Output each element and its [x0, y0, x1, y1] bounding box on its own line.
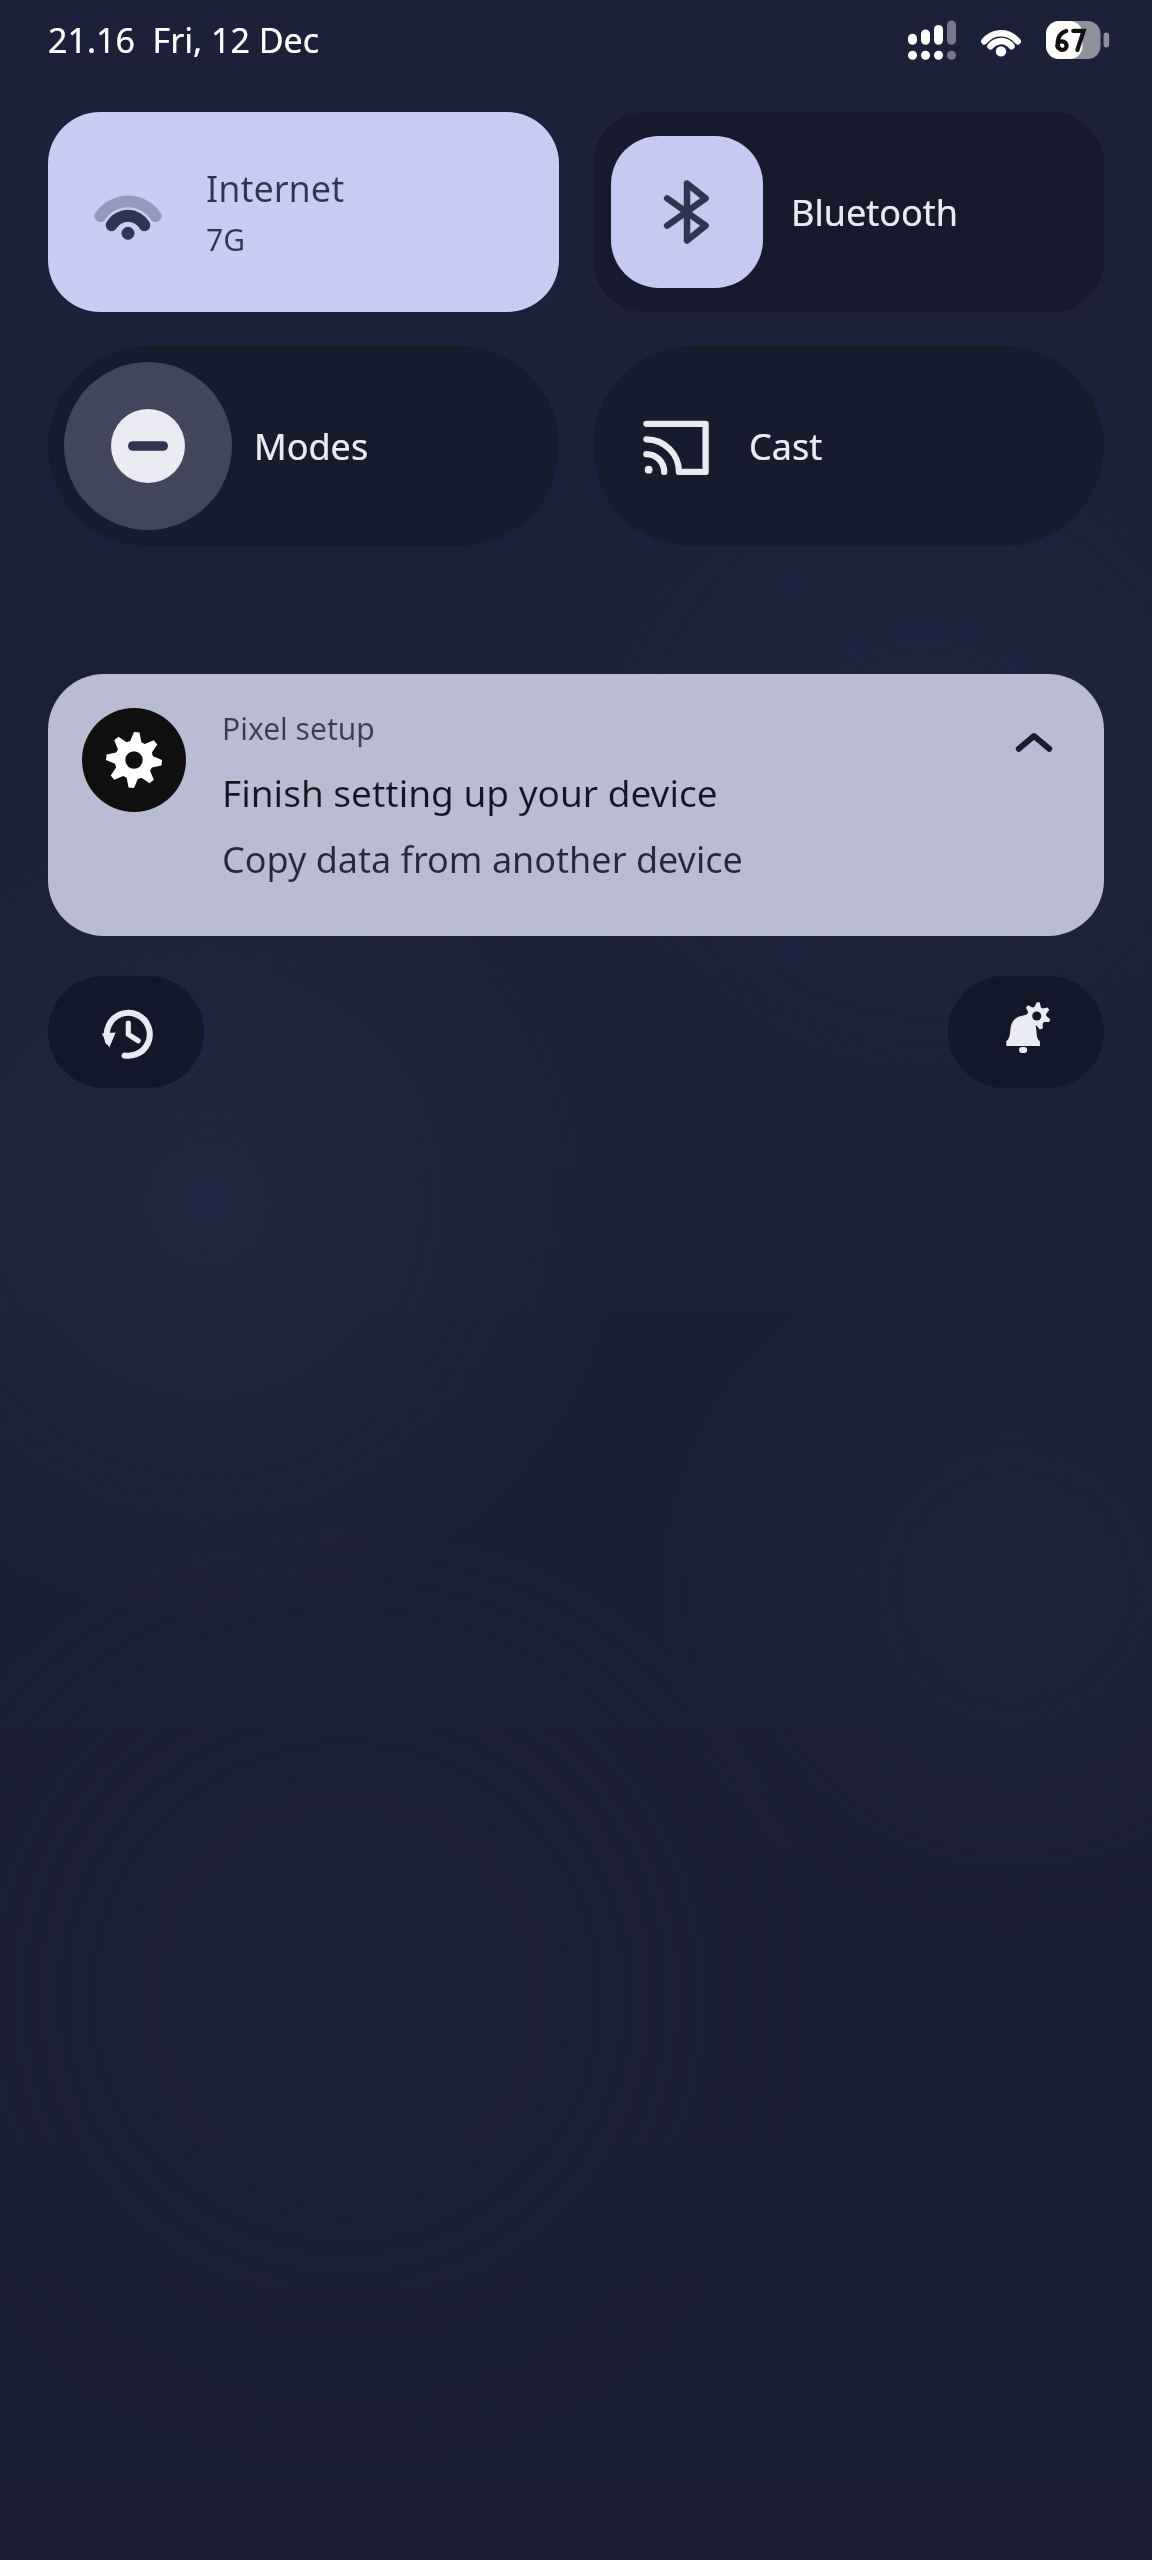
button[interactable]: Internet: [48, 112, 559, 312]
staticText: Pixel setup: [222, 708, 375, 749]
staticText: Bluetooth: [791, 188, 959, 237]
button[interactable]: Notification history: [48, 976, 204, 1088]
button[interactable]: Collapse notification: [998, 708, 1070, 780]
staticText: 7G: [206, 219, 245, 260]
staticText: 21.16 Fri, 12 Dec: [48, 17, 320, 63]
staticText: Copy data from another device: [222, 835, 743, 884]
staticText: Finish setting up your device: [222, 767, 718, 817]
button[interactable]: Pixel setup: [48, 674, 1104, 936]
button[interactable]: Bluetooth: [593, 112, 1104, 312]
button[interactable]: Modes: [48, 346, 559, 546]
staticText: Cast: [749, 422, 823, 471]
button[interactable]: Cast: [593, 346, 1104, 546]
staticText: Internet: [206, 164, 345, 213]
staticText: Modes: [254, 422, 369, 471]
button[interactable]: Notification settings: [948, 976, 1104, 1088]
